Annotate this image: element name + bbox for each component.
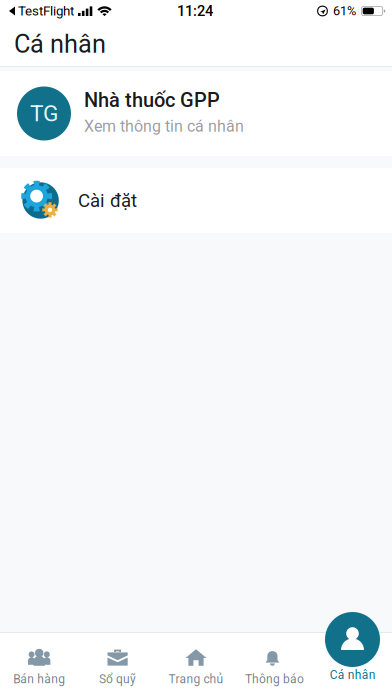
button[interactable]: Thông báo [235, 633, 314, 696]
staticText: 61% [333, 4, 356, 18]
staticText: Thông báo [245, 672, 304, 686]
staticText: Xem thông tin cá nhân [84, 117, 244, 136]
button[interactable]: Trang chủ [157, 633, 235, 696]
staticText: TestFlight [18, 3, 74, 19]
staticText: Nhà thuốc GPP [84, 88, 220, 112]
staticText: Cá nhân [14, 29, 106, 59]
button[interactable]: TG [0, 71, 392, 156]
staticText: TG [30, 100, 58, 127]
button[interactable]: Cài đặt [0, 168, 392, 233]
staticText: 11:24 [177, 2, 213, 20]
button[interactable]: Sổ quỹ [78, 633, 157, 696]
staticText: Cài đặt [78, 190, 137, 211]
staticText: Bán hàng [13, 672, 65, 686]
staticText: Cá nhân [330, 668, 376, 682]
button[interactable]: Bán hàng [0, 633, 78, 696]
staticText: Sổ quỹ [99, 672, 136, 686]
staticText: Trang chủ [168, 672, 223, 686]
button[interactable]: Cá nhân [314, 633, 392, 696]
